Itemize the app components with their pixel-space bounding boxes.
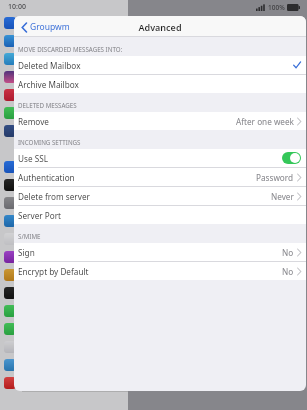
staticText: Password bbox=[256, 172, 294, 183]
staticText: Sign bbox=[18, 247, 35, 258]
staticText: Never bbox=[271, 191, 294, 202]
button[interactable]: Camera bbox=[0, 284, 128, 301]
staticText: Groupwm bbox=[30, 21, 70, 33]
button[interactable]: News bbox=[0, 374, 128, 391]
staticText: No bbox=[282, 247, 294, 258]
button[interactable]: App Store bbox=[0, 14, 128, 31]
button[interactable]: FaceTime bbox=[0, 320, 128, 337]
button[interactable]: Safari bbox=[0, 32, 128, 49]
staticText: Authentication bbox=[18, 172, 75, 183]
button[interactable]: Reminders bbox=[0, 230, 128, 247]
staticText: Server Port bbox=[18, 210, 62, 221]
staticText: After one week bbox=[236, 116, 294, 127]
button[interactable]: Authentication bbox=[14, 168, 306, 187]
other: Use SSL toggle, on bbox=[282, 152, 301, 164]
button[interactable]: Delete from server bbox=[14, 187, 306, 206]
button[interactable]: Facebook bbox=[0, 122, 128, 139]
staticText: Reminders bbox=[22, 234, 58, 244]
staticText: MOVE DISCARDED MESSAGES INTO: bbox=[18, 45, 123, 53]
staticText: Music bbox=[22, 90, 42, 100]
button[interactable]: Photos bbox=[0, 68, 128, 85]
staticText: 10:00 bbox=[8, 2, 26, 12]
staticText: Use SSL bbox=[18, 153, 48, 164]
button[interactable]: Twitter bbox=[0, 356, 128, 373]
staticText: DELETED MESSAGES bbox=[18, 101, 77, 109]
staticText: Archive Mailbox bbox=[18, 79, 79, 90]
button[interactable]: Deleted Mailbox bbox=[14, 56, 306, 75]
button[interactable]: Music bbox=[0, 86, 128, 103]
staticText: Books bbox=[22, 270, 43, 280]
button[interactable]: Sign bbox=[14, 243, 306, 262]
staticText: Remove bbox=[18, 116, 49, 127]
button[interactable]: Phone bbox=[0, 302, 128, 319]
staticText: Advanced bbox=[138, 21, 182, 33]
button[interactable]: Use SSL bbox=[14, 149, 306, 168]
button[interactable]: Files bbox=[0, 212, 128, 229]
button[interactable]: Remove bbox=[14, 112, 306, 130]
button[interactable]: Encrypt by Default bbox=[14, 262, 306, 280]
staticText: S/MIME bbox=[18, 232, 41, 240]
button[interactable]: Archive Mailbox bbox=[14, 75, 306, 93]
staticText: Messages bbox=[22, 108, 55, 118]
staticText: Deleted Mailbox bbox=[18, 60, 81, 71]
button[interactable]: Wallet bbox=[0, 176, 128, 193]
staticText: Mail bbox=[22, 54, 36, 64]
staticText: Wallet bbox=[22, 180, 43, 190]
button[interactable]: Notes bbox=[0, 158, 128, 175]
button[interactable]: Mail bbox=[0, 50, 128, 67]
staticText: Safari bbox=[22, 36, 41, 46]
button[interactable]: Groupwm bbox=[20, 19, 72, 35]
button[interactable]: Books bbox=[0, 266, 128, 283]
staticText: No bbox=[282, 266, 294, 277]
button[interactable]: Maps bbox=[0, 338, 128, 355]
staticText: Facebook bbox=[22, 126, 54, 136]
staticText: Encrypt by Default bbox=[18, 266, 89, 277]
button[interactable]: Server Port bbox=[14, 206, 306, 224]
staticText: Settings bbox=[22, 198, 49, 208]
staticText: Delete from server bbox=[18, 191, 90, 202]
staticText: Files bbox=[22, 216, 37, 226]
button[interactable]: Messages bbox=[0, 104, 128, 121]
button[interactable]: Podcasts bbox=[0, 248, 128, 265]
staticText: App Store bbox=[22, 18, 55, 28]
staticText: Notes bbox=[22, 162, 42, 172]
staticText: Podcasts bbox=[22, 252, 52, 262]
staticText: INCOMING SETTINGS bbox=[18, 138, 81, 146]
staticText: 100% bbox=[268, 3, 285, 12]
staticText: Photos bbox=[22, 72, 45, 82]
button[interactable]: Settings bbox=[0, 194, 128, 211]
